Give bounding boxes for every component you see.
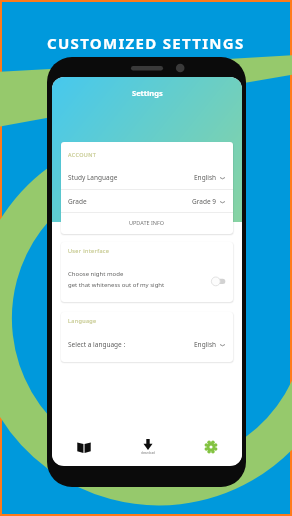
button[interactable]: Study Language — [61, 171, 233, 184]
staticText: Choose night mode — [68, 270, 124, 278]
button[interactable]: UPDATE INFO — [61, 216, 233, 228]
staticText: get that whiteness out of my sight — [68, 281, 165, 289]
staticText: English — [194, 340, 217, 349]
staticText: Select a language : — [68, 340, 126, 349]
staticText: download — [141, 451, 155, 455]
button[interactable]: Select a language : — [61, 338, 233, 351]
staticText: Study Language — [68, 173, 118, 182]
staticText: ACCOUNT — [68, 151, 97, 158]
staticText: CUSTOMIZED SETTINGS — [47, 33, 245, 53]
staticText: Grade — [68, 197, 87, 206]
staticText: UPDATE INFO — [129, 219, 165, 226]
button[interactable]: Library — [52, 428, 116, 465]
staticText: Grade 9 — [192, 197, 217, 206]
staticText: Settings — [132, 88, 163, 98]
staticText: User interface — [68, 247, 110, 254]
button[interactable]: Grade — [61, 195, 233, 208]
staticText: English — [194, 173, 217, 182]
button[interactable]: Choose night mode — [61, 267, 233, 295]
button[interactable]: Downloads — [116, 428, 179, 465]
staticText: Language — [68, 317, 97, 324]
button[interactable]: Settings — [179, 428, 242, 465]
